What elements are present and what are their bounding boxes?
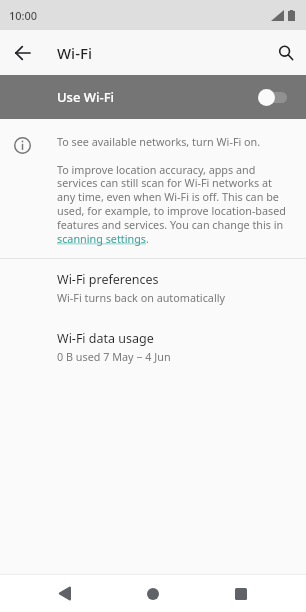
button[interactable]: Wi‑Fi data usage [0, 315, 306, 374]
staticText: Wi‑Fi [57, 43, 92, 63]
button[interactable]: Navigate up [8, 39, 36, 67]
button[interactable]: Back [46, 575, 83, 612]
button[interactable]: Use Wi‑Fi [0, 75, 306, 119]
button[interactable]: Recents [222, 575, 259, 612]
staticText: 0 B used 7 May − 4 Jun [57, 349, 171, 364]
staticText: Use Wi‑Fi [57, 88, 115, 106]
button[interactable]: Home [134, 575, 171, 612]
staticText: To see available networks, turn Wi‑Fi on… [57, 134, 261, 149]
staticText: 10:00 [9, 8, 38, 23]
button[interactable]: Wi‑Fi preferences [0, 259, 306, 315]
staticText: Wi‑Fi turns back on automatically [57, 290, 225, 305]
staticText: Wi‑Fi preferences [57, 271, 159, 288]
staticText: Wi‑Fi data usage [57, 330, 154, 347]
button[interactable]: Search [272, 39, 300, 67]
staticText: To improve location accuracy, apps and s… [57, 162, 287, 246]
